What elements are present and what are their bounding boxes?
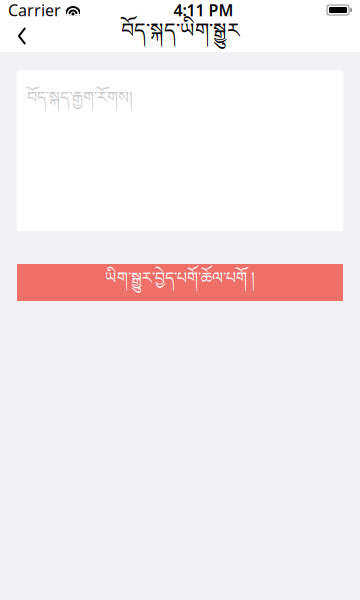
button[interactable]: བོད་སྐད་རྒྱག་རོགས། bbox=[17, 70, 343, 231]
button[interactable]: ཡིག་སྒྱུར་བྱེད་པགོ་ཆོལ་པགོ ། bbox=[17, 264, 343, 301]
staticText: ཡིག་སྒྱུར་བྱེད་པགོ་ཆོལ་པགོ ། bbox=[105, 260, 255, 304]
staticText: Carrier bbox=[8, 0, 61, 21]
button[interactable]: Back bbox=[0, 20, 44, 52]
staticText: བོད་སྐད་རྒྱག་རོགས། bbox=[27, 80, 133, 124]
staticText: བོད་སྐད་ཡིག་སྒྱུར bbox=[121, 9, 239, 63]
staticText: 4:11 PM bbox=[173, 0, 233, 21]
